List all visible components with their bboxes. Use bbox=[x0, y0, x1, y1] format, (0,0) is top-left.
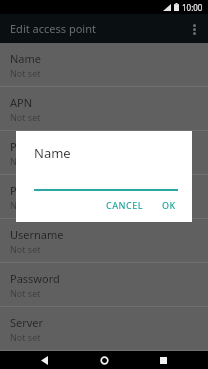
staticText: Not set bbox=[10, 331, 41, 343]
staticText: Password bbox=[10, 271, 60, 286]
button[interactable]: Home bbox=[90, 351, 119, 369]
button[interactable]: Name bbox=[0, 43, 208, 87]
button[interactable]: Proxy bbox=[0, 131, 208, 175]
staticText: Not set bbox=[10, 287, 41, 299]
button[interactable]: Port bbox=[0, 175, 208, 219]
staticText: Username bbox=[10, 227, 64, 242]
staticText: CANCEL bbox=[106, 199, 144, 211]
staticText: Edit access point bbox=[10, 21, 96, 36]
staticText: Not set bbox=[10, 243, 41, 255]
button[interactable]: Back bbox=[30, 351, 59, 369]
staticText: Not set bbox=[10, 67, 41, 79]
staticText: Not set bbox=[10, 155, 41, 167]
staticText: Not set bbox=[10, 111, 41, 123]
button[interactable]: Username bbox=[0, 219, 208, 263]
staticText: Proxy bbox=[10, 139, 39, 154]
button[interactable] bbox=[34, 181, 178, 191]
staticText: Name bbox=[34, 144, 71, 162]
button[interactable]: Recent apps bbox=[149, 351, 178, 369]
button[interactable]: OK bbox=[158, 194, 180, 216]
button[interactable]: More options bbox=[180, 15, 208, 43]
staticText: OK bbox=[162, 199, 176, 211]
staticText: Name bbox=[10, 51, 42, 66]
button[interactable]: CANCEL bbox=[102, 194, 148, 216]
staticText: Port bbox=[10, 183, 32, 198]
staticText: 10:00 bbox=[182, 2, 203, 13]
button[interactable]: APN bbox=[0, 87, 208, 131]
staticText: Not set bbox=[10, 199, 41, 211]
button[interactable]: Password bbox=[0, 263, 208, 307]
button[interactable]: Server bbox=[0, 307, 208, 351]
staticText: APN bbox=[10, 95, 33, 110]
staticText: Server bbox=[10, 315, 44, 330]
